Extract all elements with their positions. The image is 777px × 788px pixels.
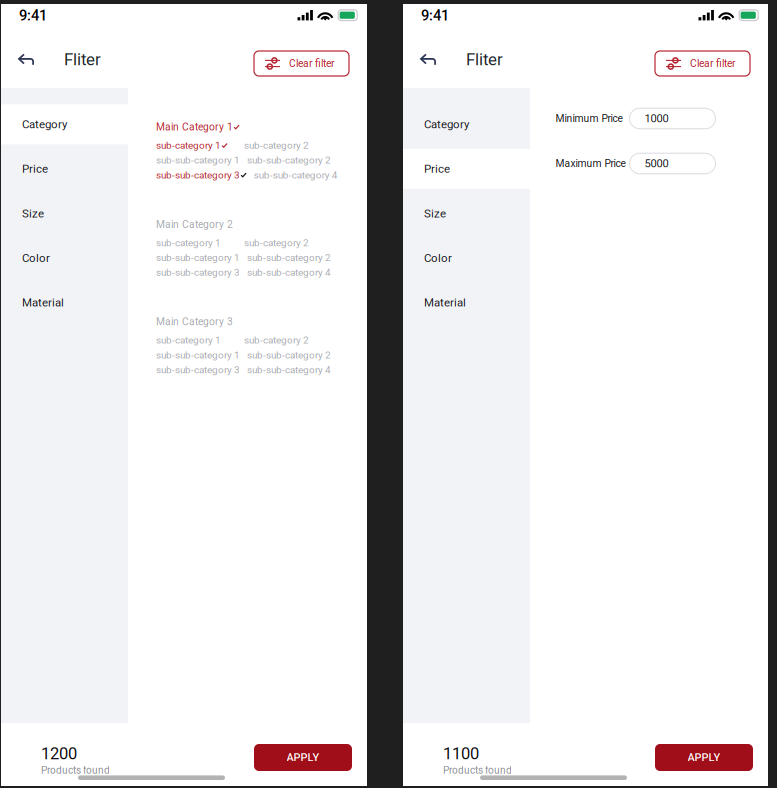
button[interactable]: Back [407,37,449,81]
button[interactable]: Size [1,191,128,236]
button[interactable]: Main Category 1 [156,121,240,133]
staticText: sub-sub-category 1 [156,252,240,263]
button[interactable]: sub-category 1 [156,140,228,151]
staticText: sub-category 1 [156,334,221,346]
staticText: Size [424,207,446,220]
staticText: Size [22,207,44,220]
button[interactable]: Material [1,280,128,325]
staticText: sub-sub-category 3 [156,364,240,376]
staticText: Products found [443,764,512,776]
button[interactable]: Main Category 3 [156,316,233,328]
button[interactable]: sub-sub-category 2 [247,252,331,263]
staticText: Category [22,118,67,131]
button[interactable]: Material [403,280,530,325]
staticText: 1200 [41,744,77,763]
staticText: sub-sub-category 1 [156,154,240,166]
staticText: sub-sub-category 4 [247,267,331,278]
button[interactable]: sub-sub-category 3 [156,169,247,181]
staticText: 5000 [644,157,668,170]
staticText: Color [424,251,452,265]
staticText: Maximum Price [555,157,625,169]
staticText: Clear filter [690,57,735,69]
button[interactable]: sub-category 1 [156,237,221,249]
staticText: Minimum Price [555,112,622,124]
staticText: sub-sub-category 2 [247,349,331,361]
staticText: sub-category 1 [156,140,221,151]
button[interactable]: sub-sub-category 3 [156,267,240,278]
staticText: Material [424,296,466,309]
button[interactable]: APPLY [655,744,753,771]
button[interactable]: Back [5,37,47,81]
button[interactable]: sub-sub-category 1 [156,349,240,361]
button[interactable]: sub-sub-category 2 [247,349,331,361]
staticText: sub-sub-category 2 [247,252,331,263]
staticText: sub-category 2 [244,140,309,151]
staticText: APPLY [687,751,720,764]
staticText: 9:41 [19,7,47,24]
button[interactable]: 5000 [629,153,715,174]
button[interactable]: sub-category 1 [156,334,221,346]
button[interactable]: Main Category 2 [156,218,233,230]
staticText: Price [22,162,48,176]
button[interactable]: APPLY [254,744,352,771]
staticText: Category [424,118,469,131]
staticText: sub-category 2 [244,334,309,346]
staticText: sub-sub-category 4 [247,364,331,376]
staticText: Fliter [64,50,101,69]
staticText: Price [424,162,450,176]
button[interactable]: sub-category 2 [244,140,309,151]
button[interactable]: Price [1,147,128,191]
staticText: sub-sub-category 1 [156,349,240,361]
button[interactable]: sub-sub-category 4 [254,169,338,181]
staticText: Main Category 3 [156,316,233,328]
staticText: 1100 [443,744,479,763]
staticText: Products found [41,764,110,776]
staticText: sub-sub-category 2 [247,154,331,166]
staticText: sub-sub-category 3 [156,169,240,181]
staticText: 1000 [644,112,668,125]
staticText: Fliter [466,50,503,69]
button[interactable]: Color [403,236,530,280]
button[interactable]: sub-sub-category 2 [247,154,331,166]
button[interactable]: Price [403,147,530,191]
staticText: sub-sub-category 4 [254,169,338,181]
staticText: sub-sub-category 3 [156,267,240,278]
button[interactable]: Category [1,102,128,147]
button[interactable]: Clear filter [655,47,750,72]
staticText: Clear filter [289,57,334,69]
button[interactable]: sub-sub-category 3 [156,364,240,376]
button[interactable]: Color [1,236,128,280]
button[interactable]: Clear filter [254,47,349,72]
staticText: Color [22,251,50,265]
staticText: Main Category 2 [156,218,233,230]
button[interactable]: sub-sub-category 1 [156,154,240,166]
staticText: 9:41 [421,7,449,24]
button[interactable]: 1000 [629,108,715,129]
button[interactable]: sub-category 2 [244,334,309,346]
button[interactable]: sub-sub-category 4 [247,364,331,376]
staticText: Main Category 1 [156,121,233,133]
button[interactable]: Category [403,102,530,147]
button[interactable]: sub-sub-category 4 [247,267,331,278]
staticText: sub-category 2 [244,237,309,249]
button[interactable]: sub-sub-category 1 [156,252,240,263]
staticText: APPLY [286,751,319,764]
staticText: Material [22,296,64,309]
button[interactable]: sub-category 2 [244,237,309,249]
staticText: sub-category 1 [156,237,221,249]
button[interactable]: Size [403,191,530,236]
